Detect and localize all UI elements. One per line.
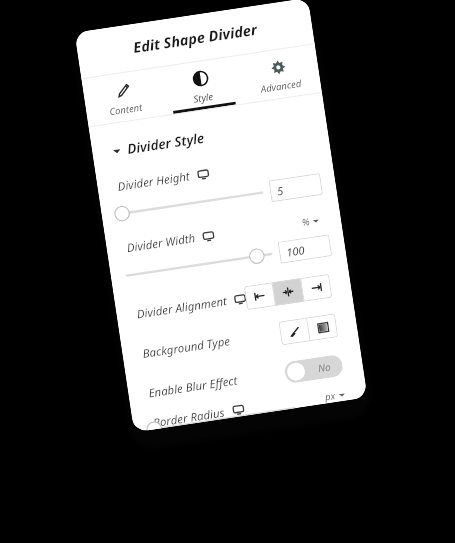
other: Responsive device: [234, 293, 246, 306]
other: Responsive device: [202, 230, 215, 243]
staticText: No: [317, 359, 332, 375]
button[interactable]: 5: [268, 173, 323, 202]
other: Responsive device: [197, 168, 210, 181]
staticText: 5: [276, 182, 285, 198]
staticText: %: [301, 215, 311, 229]
staticText: Border Radius: [152, 405, 226, 429]
other: Content: [114, 82, 132, 99]
other: Style: [191, 69, 210, 88]
staticText: Enable Blur Effect: [147, 372, 239, 401]
button[interactable]: No: [283, 354, 344, 384]
button[interactable]: px: [322, 387, 348, 404]
button[interactable]: Align left: [244, 282, 275, 310]
staticText: Divider Width: [126, 230, 196, 256]
staticText: Edit Shape Divider: [132, 19, 258, 57]
button[interactable]: %: [299, 213, 322, 229]
staticText: Background Type: [141, 333, 232, 362]
staticText: Divider Style: [126, 129, 206, 158]
button[interactable]: Align center: [272, 278, 304, 306]
button[interactable]: Divider Style: [91, 107, 328, 167]
staticText: Style: [193, 90, 214, 106]
button[interactable]: [123, 243, 275, 287]
staticText: Divider Height: [116, 168, 191, 195]
button[interactable]: Content: [81, 68, 166, 127]
button[interactable]: Align right: [301, 274, 332, 302]
other: Advanced: [270, 59, 287, 76]
staticText: Divider Alignment: [136, 293, 228, 322]
other: Responsive device: [232, 404, 245, 416]
button[interactable]: 100: [278, 234, 332, 264]
button[interactable]: [114, 181, 266, 225]
button[interactable]: Gradient background: [307, 313, 338, 341]
button[interactable]: Classic background: [278, 317, 310, 345]
staticText: Content: [109, 100, 143, 118]
staticText: 100: [285, 242, 306, 260]
button[interactable]: Style: [158, 56, 244, 115]
staticText: px: [324, 389, 337, 404]
button[interactable]: Advanced: [237, 44, 322, 103]
staticText: Advanced: [260, 77, 302, 96]
